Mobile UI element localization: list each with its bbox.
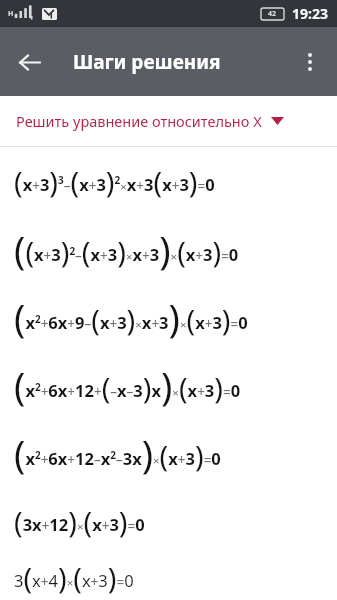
- staticText: Шаги решения: [73, 49, 221, 75]
- staticText: 19:23: [292, 4, 328, 23]
- staticText: ((x+3)2–(x+3)×x+3)×(x+3)=0: [14, 223, 239, 275]
- button[interactable]: (x2+6x+9–(x+3)×x+3)×(x+3)=0: [0, 283, 337, 351]
- button[interactable]: More options: [288, 40, 332, 84]
- button[interactable]: ((x+3)2–(x+3)×x+3)×(x+3)=0: [0, 215, 337, 283]
- staticText: 42: [268, 9, 277, 19]
- button[interactable]: (x+3)3–(x+3)2×x+3(x+3)=0: [0, 147, 337, 215]
- staticText: (x+3)3–(x+3)2×x+3(x+3)=0: [14, 162, 215, 201]
- button[interactable]: (x2+6x+12–x2–3x)×(x+3)=0: [0, 419, 337, 487]
- staticText: (3x+12)×(x+3)=0: [14, 502, 145, 541]
- button[interactable]: (3x+12)×(x+3)=0: [0, 487, 337, 555]
- staticText: (x2+6x+12+(–x–3)x)×(x+3)=0: [14, 359, 241, 411]
- staticText: H: [8, 9, 14, 19]
- staticText: Решить уравнение относительно X: [16, 111, 262, 131]
- button[interactable]: Back: [7, 40, 51, 84]
- staticText: (x2+6x+12–x2–3x)×(x+3)=0: [14, 427, 221, 479]
- button[interactable]: 3(x+4)×(x+3)=0: [0, 555, 337, 600]
- button[interactable]: Решить уравнение относительно X: [0, 96, 337, 146]
- staticText: 3(x+4)×(x+3)=0: [14, 558, 134, 597]
- button[interactable]: (x2+6x+12+(–x–3)x)×(x+3)=0: [0, 351, 337, 419]
- staticText: (x2+6x+9–(x+3)×x+3)×(x+3)=0: [14, 291, 248, 343]
